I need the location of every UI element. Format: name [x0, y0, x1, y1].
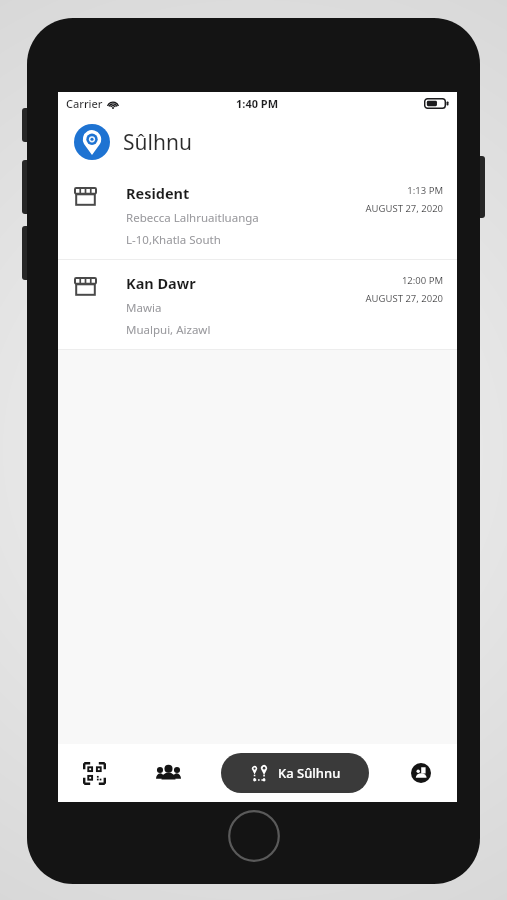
- button[interactable]: People: [146, 751, 190, 795]
- button[interactable]: Ka Sûlhnu: [221, 753, 369, 793]
- button[interactable]: Sûlhnu: [58, 114, 457, 170]
- staticText: AUGUST 27, 2020: [365, 292, 443, 305]
- button[interactable]: Kan Dawr: [58, 260, 457, 349]
- staticText: 12:00 PM: [401, 274, 443, 287]
- staticText: Mualpui, Aizawl: [126, 322, 211, 338]
- staticText: AUGUST 27, 2020: [365, 202, 443, 215]
- staticText: Resident: [126, 183, 190, 203]
- staticText: Mawia: [126, 300, 162, 316]
- staticText: Rebecca Lalhruaitluanga: [126, 210, 259, 226]
- staticText: Carrier: [66, 96, 103, 111]
- staticText: Kan Dawr: [126, 273, 196, 293]
- staticText: Ka Sûlhnu: [278, 764, 341, 782]
- staticText: 1:40 PM: [236, 96, 279, 111]
- button[interactable]: Resident: [58, 170, 457, 259]
- button[interactable]: Scan QR code: [72, 751, 116, 795]
- staticText: 1:13 PM: [407, 184, 443, 197]
- button[interactable]: Profile: [399, 751, 443, 795]
- staticText: Sûlhnu: [123, 128, 192, 157]
- staticText: L-10,Khatla South: [126, 232, 221, 248]
